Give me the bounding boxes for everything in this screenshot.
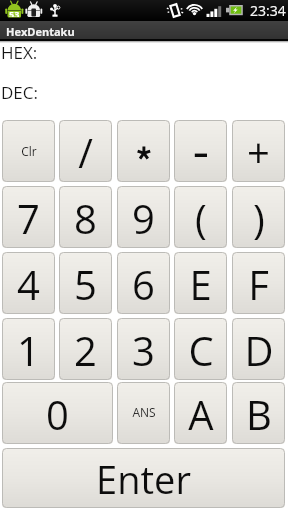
staticText: F [248,257,269,311]
staticText: 9 [132,191,155,245]
button[interactable]: B [232,382,285,444]
staticText: 5 [74,257,97,311]
button[interactable]: D [232,318,285,380]
staticText: 7 [17,191,40,245]
staticText: ) [253,191,265,245]
button[interactable]: ( [174,186,227,248]
staticText: 1 [17,323,40,377]
staticText: 3 [132,323,155,377]
button[interactable]: ANS [117,382,170,444]
staticText: D [244,323,274,377]
button[interactable]: - [174,120,227,182]
staticText: C [188,323,214,377]
button[interactable]: 6 [117,252,170,314]
button[interactable]: + [232,120,285,182]
button[interactable]: * [117,120,170,182]
staticText: 0 [46,387,69,441]
button[interactable]: Enter [2,448,285,508]
staticText: 8 [74,191,97,245]
button[interactable]: 4 [2,252,55,314]
button[interactable]: E [174,252,227,314]
staticText: ( [195,191,207,245]
button[interactable]: 1 [2,318,55,380]
staticText: E [189,257,212,311]
staticText: ANS [132,404,156,420]
staticText: 53 [9,8,20,17]
button[interactable]: C [174,318,227,380]
staticText: A [188,387,214,441]
button[interactable]: A [174,382,227,444]
button[interactable]: 2 [59,318,112,380]
button[interactable]: F [232,252,285,314]
button[interactable]: 8 [59,186,112,248]
staticText: B [246,387,272,441]
staticText: DEC: [1,81,38,104]
staticText: / [78,125,93,179]
staticText: HEX: [1,41,38,64]
staticText: Enter [96,453,191,505]
staticText: 4 [17,257,40,311]
button[interactable]: / [59,120,112,182]
staticText: Clr [21,143,37,159]
button[interactable]: 9 [117,186,170,248]
button[interactable]: Clr [2,120,55,182]
button[interactable]: ) [232,186,285,248]
staticText: 23:34 [250,1,286,20]
staticText: 2 [74,323,97,377]
staticText: HexDentaku [6,24,75,39]
button[interactable]: 0 [2,382,113,444]
button[interactable]: 7 [2,186,55,248]
button[interactable]: 3 [117,318,170,380]
staticText: 6 [132,257,155,311]
staticText: + [247,125,270,179]
button[interactable]: 5 [59,252,112,314]
